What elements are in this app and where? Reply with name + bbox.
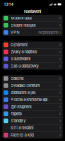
button[interactable]: Čas u obrazovky [2, 63, 63, 70]
staticText: Zvuky a haptika [11, 49, 37, 54]
staticText: Oznámení [11, 42, 28, 47]
staticText: Face ID a kód [11, 133, 34, 137]
staticText: Zpřístupnění [11, 104, 32, 109]
staticText: Mobilní data [11, 16, 32, 21]
button[interactable]: Soustředění [2, 56, 63, 63]
button[interactable]: Ovládací centrum [2, 82, 63, 89]
button[interactable]: StandBy [2, 117, 63, 124]
button[interactable]: Obecné [2, 75, 63, 82]
staticText: StandBy [11, 118, 26, 123]
button[interactable]: Tapeta [2, 110, 63, 117]
staticText: VPN [11, 30, 20, 35]
staticText: Čas u obrazovky [11, 64, 39, 68]
staticText: Nepřipojeno [38, 30, 58, 35]
staticText: Tapeta [11, 111, 22, 116]
button[interactable]: Zobrazení a jas [2, 89, 63, 96]
button[interactable]: Siri a hledání [2, 124, 63, 131]
button[interactable]: Osobní hotspot [2, 22, 63, 29]
button[interactable]: Mobilní data [2, 15, 63, 22]
button[interactable]: Plocha a knihovna apl. [2, 96, 63, 103]
staticText: Siri a hledání [11, 125, 34, 130]
button[interactable]: Face ID a kód [2, 132, 63, 139]
button[interactable]: Oznámení [2, 41, 63, 48]
staticText: Zobrazení a jas [11, 90, 36, 95]
staticText: Obecné [11, 76, 24, 81]
staticText: Nastavení [24, 9, 41, 14]
staticText: Ovládací centrum [11, 83, 40, 88]
button[interactable]: VPN [2, 29, 63, 36]
staticText: 12:14 [4, 2, 14, 7]
button[interactable]: Zpřístupnění [2, 103, 63, 110]
staticText: Soustředění [11, 56, 31, 61]
button[interactable]: Zvuky a haptika [2, 48, 63, 55]
staticText: Osobní hotspot [11, 23, 36, 28]
staticText: Plocha a knihovna apl. [10, 97, 48, 102]
